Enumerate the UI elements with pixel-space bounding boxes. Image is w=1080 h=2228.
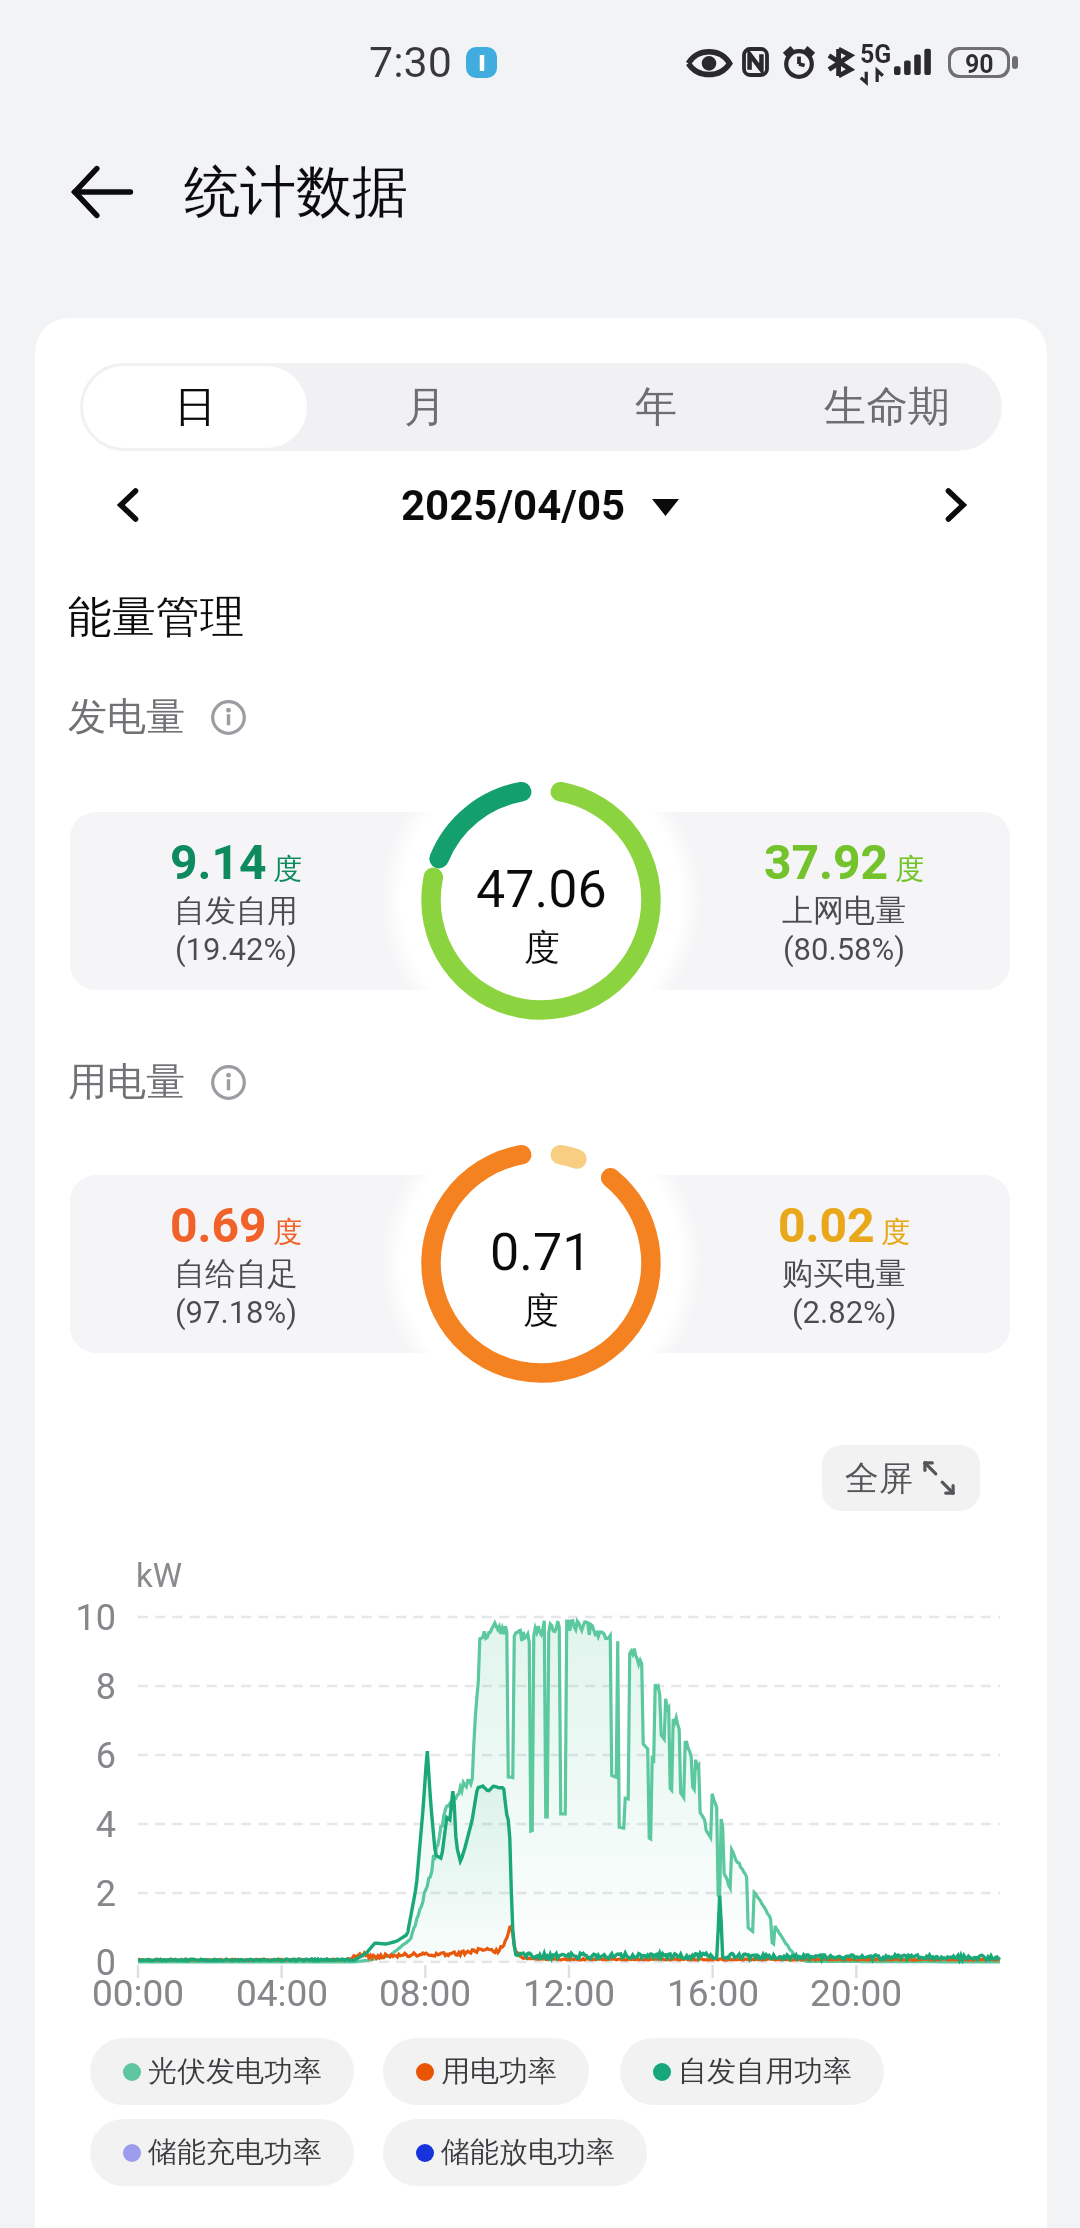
staticText: 4: [35, 1804, 116, 1846]
button[interactable]: 日: [83, 366, 307, 448]
staticText: 自给自足: [174, 1254, 298, 1293]
staticText: (97.18%): [175, 1294, 297, 1330]
staticText: 8: [35, 1666, 116, 1708]
staticText: 用电功率: [441, 2053, 557, 2090]
staticText: 度: [524, 925, 560, 970]
staticText: 光伏发电功率: [148, 2053, 322, 2090]
button[interactable]: 用电功率: [383, 2038, 589, 2105]
staticText: 0: [35, 1942, 116, 1984]
staticText: 37.92: [764, 834, 889, 890]
button[interactable]: Previous: [93, 470, 163, 540]
staticText: 度: [273, 1214, 302, 1251]
staticText: 储能放电功率: [441, 2134, 615, 2171]
staticText: 月: [404, 381, 446, 434]
staticText: 08:00: [345, 1972, 505, 2015]
button[interactable]: 自发自用功率: [620, 2038, 884, 2105]
staticText: 储能充电功率: [148, 2134, 322, 2171]
staticText: 能量管理: [68, 590, 244, 645]
staticText: 度: [881, 1214, 910, 1251]
staticText: 上网电量: [782, 891, 906, 930]
staticText: 年: [635, 381, 677, 434]
staticText: 统计数据: [184, 157, 408, 228]
staticText: 全屏: [845, 1457, 913, 1500]
button[interactable]: Info: [206, 695, 250, 739]
staticText: 20:00: [776, 1972, 936, 2015]
button[interactable]: Next: [921, 470, 991, 540]
staticText: 47.06: [476, 859, 607, 920]
staticText: (19.42%): [175, 931, 297, 967]
staticText: 自发自用: [174, 891, 298, 930]
staticText: 0.69: [170, 1197, 267, 1253]
staticText: 90: [965, 50, 994, 75]
staticText: 发电量: [68, 692, 185, 741]
button[interactable]: 储能充电功率: [90, 2119, 354, 2186]
staticText: (2.82%): [792, 1294, 897, 1330]
staticText: 9.14: [170, 834, 267, 890]
staticText: 用电量: [68, 1057, 185, 1106]
staticText: 度: [273, 851, 302, 888]
staticText: kW: [136, 1556, 183, 1595]
staticText: 生命期: [824, 381, 950, 434]
staticText: 10: [35, 1597, 116, 1639]
staticText: 16:00: [633, 1972, 793, 2015]
button[interactable]: Info: [206, 1060, 250, 1104]
staticText: 12:00: [489, 1972, 649, 2015]
button[interactable]: 月: [313, 366, 537, 448]
staticText: 00:00: [58, 1972, 218, 2015]
staticText: 购买电量: [782, 1254, 906, 1293]
staticText: 度: [523, 1288, 559, 1333]
button[interactable]: Back: [60, 146, 144, 238]
staticText: 5G: [860, 40, 892, 69]
staticText: 6: [35, 1735, 116, 1777]
button[interactable]: 2025/04/05: [401, 481, 679, 530]
button[interactable]: 全屏: [822, 1445, 980, 1511]
staticText: 2025/04/05: [401, 481, 626, 530]
button[interactable]: 生命期: [774, 366, 999, 448]
staticText: 自发自用功率: [678, 2053, 852, 2090]
staticText: 度: [895, 851, 924, 888]
staticText: 0.71: [490, 1222, 592, 1283]
staticText: 7:30: [369, 37, 452, 87]
staticText: 04:00: [202, 1972, 362, 2015]
staticText: 日: [174, 381, 216, 434]
button[interactable]: 储能放电功率: [383, 2119, 647, 2186]
button[interactable]: 光伏发电功率: [90, 2038, 354, 2105]
staticText: (80.58%): [783, 931, 905, 967]
staticText: 2: [35, 1873, 116, 1915]
button[interactable]: 年: [543, 366, 768, 448]
staticText: 0.02: [778, 1197, 875, 1253]
